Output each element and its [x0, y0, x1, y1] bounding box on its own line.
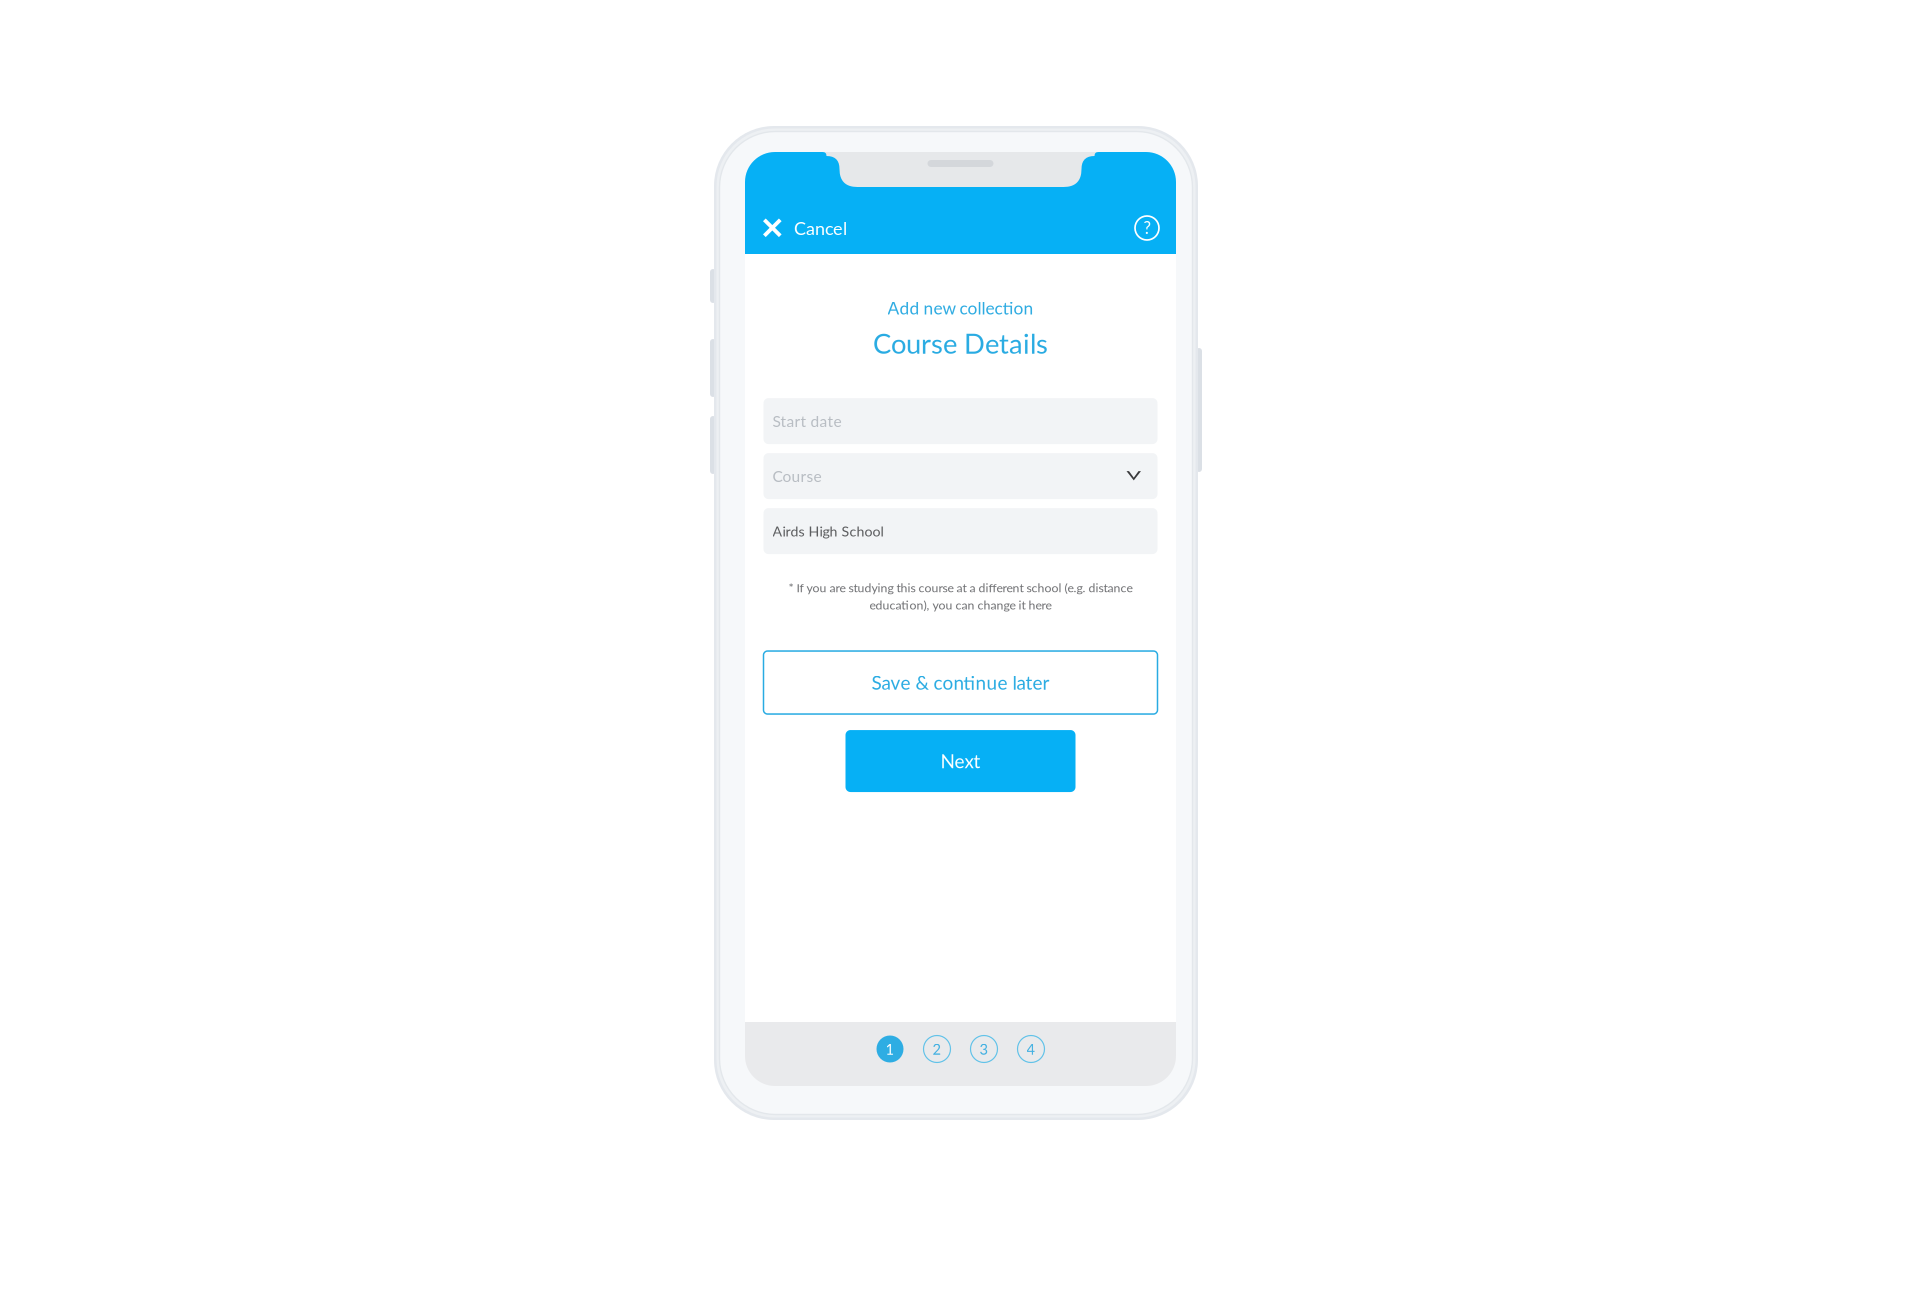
staticText: 1	[885, 1040, 894, 1058]
staticText: Save & continue later	[871, 671, 1049, 694]
staticText: education), you can change it here	[869, 597, 1051, 612]
staticText: ?	[1143, 217, 1150, 237]
button[interactable]: 2	[920, 1032, 954, 1066]
button[interactable]: 1	[873, 1032, 907, 1066]
staticText: 4	[1026, 1040, 1035, 1058]
staticText: Add new collection	[887, 297, 1033, 318]
staticText: Course Details	[873, 327, 1048, 360]
button[interactable]: Next	[845, 730, 1075, 792]
button[interactable]: 3	[967, 1032, 1001, 1066]
button[interactable]: 4	[1014, 1032, 1048, 1066]
button[interactable]: Airds High School	[763, 508, 1157, 554]
staticText: * If you are studying this course at a d…	[788, 580, 1132, 595]
staticText: Airds High School	[772, 523, 883, 540]
staticText: Start date	[772, 412, 841, 430]
button[interactable]: Help	[1123, 204, 1176, 252]
button[interactable]: Cancel	[745, 204, 859, 252]
staticText: 3	[979, 1040, 988, 1058]
button[interactable]: Course	[763, 453, 1157, 499]
button[interactable]: Save & continue later	[763, 651, 1157, 714]
button[interactable]: Start date	[763, 398, 1157, 444]
staticText: 2	[932, 1040, 941, 1058]
staticText: Course	[772, 467, 821, 485]
staticText: Next	[940, 750, 980, 772]
staticText: Cancel	[794, 217, 847, 239]
